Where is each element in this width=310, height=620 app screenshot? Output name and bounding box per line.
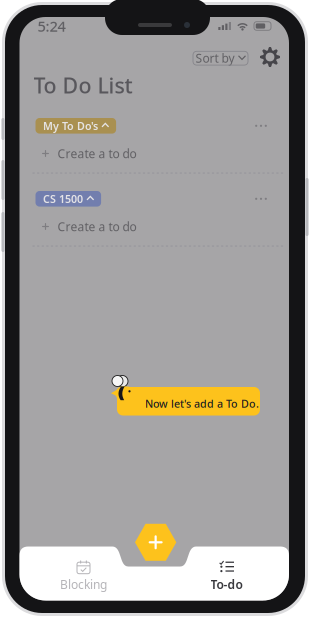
button[interactable]: More options [250, 118, 272, 133]
button[interactable]: Blocking [28, 546, 138, 588]
staticText: Now let's add a To Do. [145, 396, 259, 411]
staticText: Create a to do [57, 145, 136, 161]
button[interactable]: Create a to do [42, 218, 271, 234]
staticText: Create a to do [57, 218, 136, 234]
staticText: Sort by [195, 50, 234, 66]
button[interactable]: CS 1500 [35, 191, 101, 207]
button[interactable]: More options [250, 191, 272, 206]
staticText: CS 1500 [43, 192, 83, 206]
button[interactable]: To-do [171, 546, 281, 588]
staticText: Blocking [60, 576, 107, 592]
button[interactable]: Add to do [135, 524, 176, 561]
staticText: To-do [210, 576, 242, 592]
staticText: To Do List [33, 71, 132, 99]
button[interactable]: Sort by [193, 51, 248, 65]
staticText: My To Do's [43, 119, 98, 133]
button[interactable]: Create a to do [42, 145, 271, 161]
staticText: 5:24 [37, 16, 65, 36]
button[interactable]: My To Do's [35, 118, 116, 134]
button[interactable]: Settings [260, 47, 280, 67]
